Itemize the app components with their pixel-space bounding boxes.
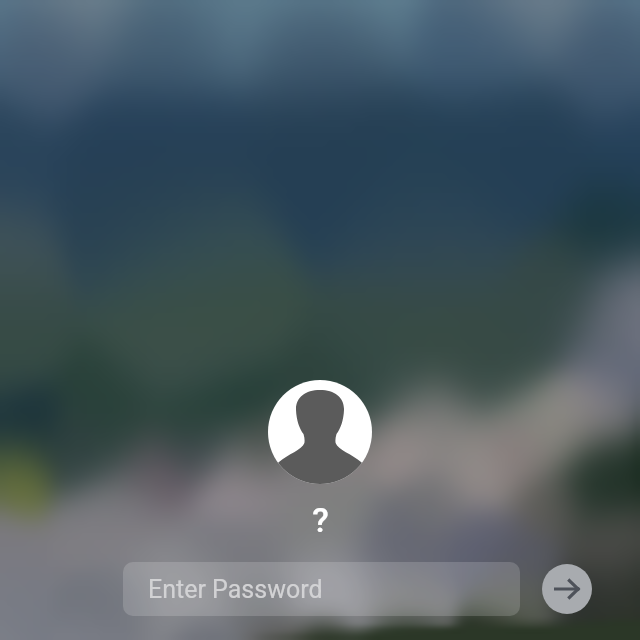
staticText: ? <box>312 500 329 540</box>
staticText: Enter Password <box>148 575 323 604</box>
button[interactable]: Enter Password <box>123 562 520 616</box>
button[interactable]: User avatar <box>268 380 372 484</box>
button[interactable]: Submit password <box>542 564 592 614</box>
